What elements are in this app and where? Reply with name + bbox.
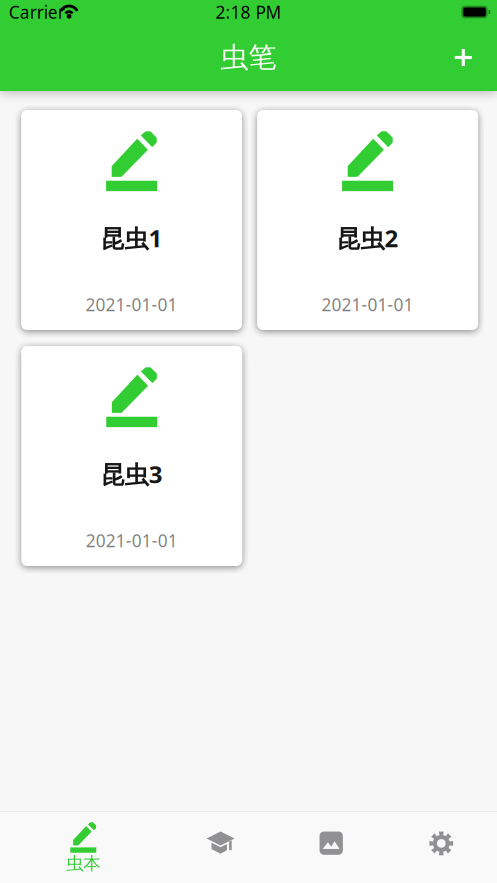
staticText: 虫本 [66, 853, 100, 874]
staticText: 2021-01-01 [86, 293, 178, 316]
button[interactable]: 昆虫1 [21, 110, 242, 330]
button[interactable]: Settings [393, 812, 489, 883]
button[interactable]: 昆虫2 [257, 110, 478, 330]
button[interactable]: Add [441, 35, 485, 79]
staticText: 昆虫2 [337, 222, 399, 254]
staticText: 虫笔 [220, 40, 276, 75]
button[interactable]: 昆虫3 [21, 346, 242, 566]
button[interactable]: Learn [172, 812, 268, 883]
staticText: 2021-01-01 [86, 529, 178, 552]
staticText: 昆虫1 [101, 222, 163, 254]
button[interactable]: Photos [283, 812, 379, 883]
staticText: 2021-01-01 [322, 293, 414, 316]
button[interactable]: 虫本 [35, 812, 131, 883]
staticText: 昆虫3 [101, 458, 163, 490]
staticText: 2:18 PM [215, 0, 281, 23]
staticText: Carrier [9, 0, 65, 23]
